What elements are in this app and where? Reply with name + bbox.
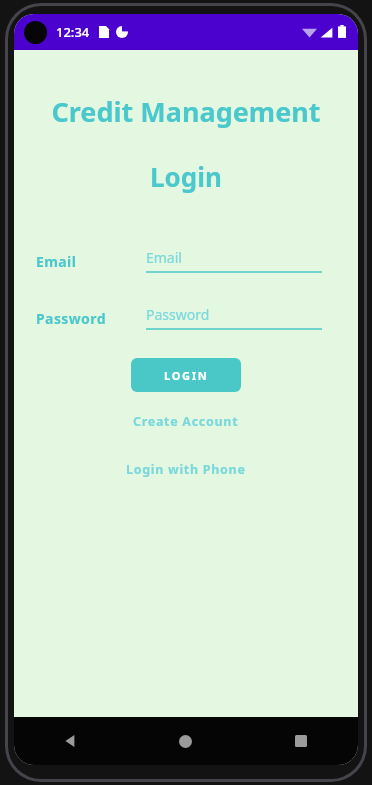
button[interactable]: Recent apps (243, 717, 358, 765)
staticText: Email (146, 248, 182, 267)
staticText: Password (146, 305, 210, 324)
staticText: Create Account (133, 413, 239, 430)
button[interactable]: Back (14, 717, 128, 765)
staticText: Email (36, 252, 77, 271)
staticText: 12:34 (56, 23, 90, 41)
button[interactable]: Login with Phone (116, 456, 256, 483)
button[interactable]: LOGIN (131, 358, 241, 392)
staticText: Login (150, 159, 222, 194)
staticText: Password (36, 309, 106, 328)
button[interactable]: Home (128, 717, 243, 765)
staticText: Login with Phone (126, 461, 246, 478)
button[interactable]: Email (146, 248, 322, 273)
staticText: Credit Management (51, 93, 321, 130)
button[interactable]: Create Account (123, 408, 249, 435)
button[interactable]: Password (146, 305, 322, 330)
staticText: LOGIN (164, 368, 209, 383)
